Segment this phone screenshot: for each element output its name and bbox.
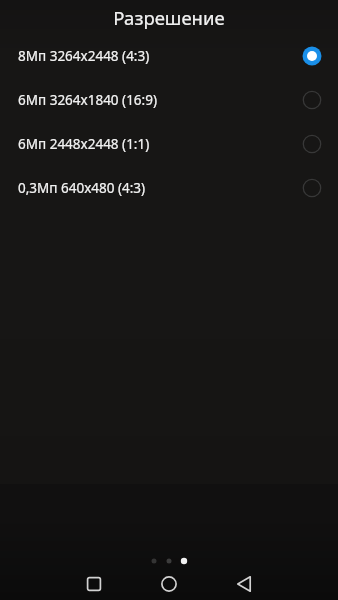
staticText: Разрешение [113,5,225,30]
button[interactable]: 8Мп 3264x2448 (4:3) [0,34,338,78]
staticText: 6Мп 3264x1840 (16:9) [18,91,157,109]
button[interactable]: Recent apps [79,569,109,599]
staticText: 0,3Мп 640x480 (4:3) [18,179,146,197]
button[interactable]: 6Мп 3264x1840 (16:9) [0,78,338,122]
button[interactable]: Home [154,569,184,599]
staticText: 6Мп 2448x2448 (1:1) [18,135,150,153]
button[interactable]: Back [229,569,259,599]
button[interactable]: 0,3Мп 640x480 (4:3) [0,166,338,210]
button[interactable]: 6Мп 2448x2448 (1:1) [0,122,338,166]
staticText: 8Мп 3264x2448 (4:3) [18,47,150,65]
